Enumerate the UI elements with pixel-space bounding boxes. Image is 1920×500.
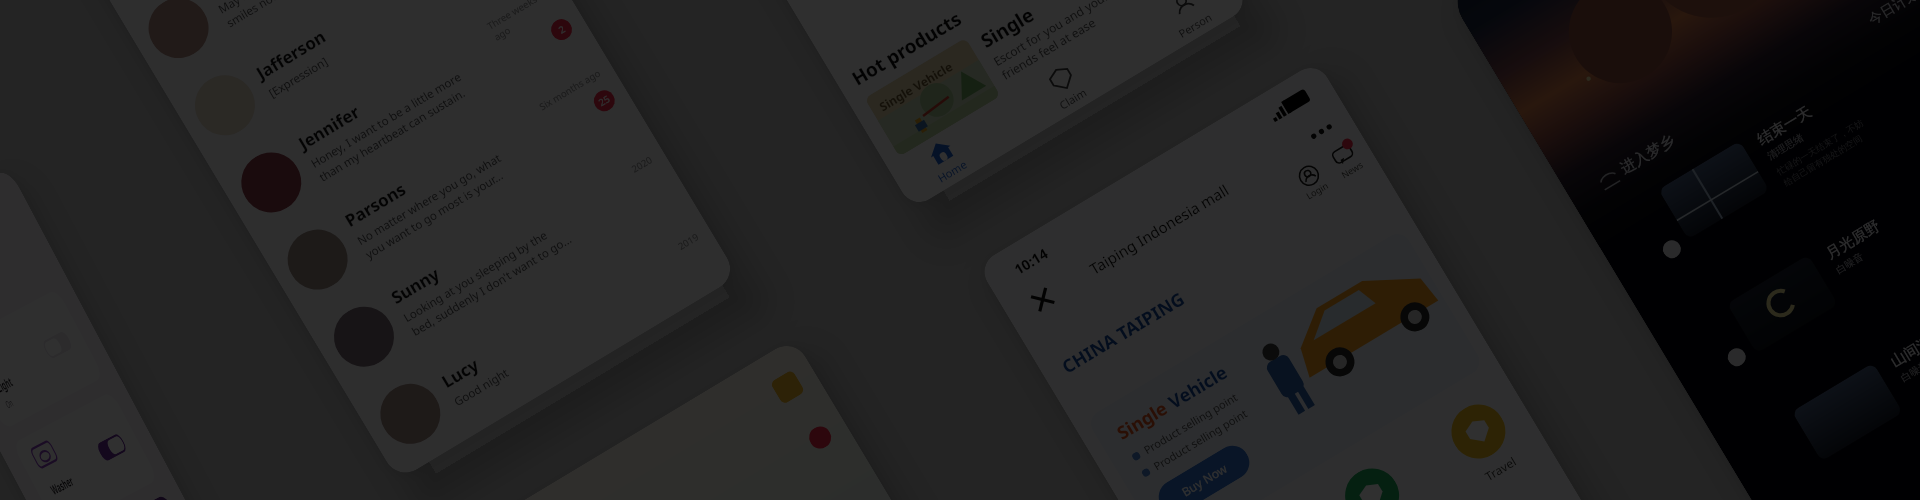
- staticText: Login: [1304, 179, 1330, 201]
- button[interactable]: [1028, 285, 1057, 314]
- staticText: Escort for you and your friends feel at …: [990, 0, 1120, 83]
- staticText: Lucy: [437, 353, 483, 393]
- staticText: 白噪音: [1833, 250, 1866, 276]
- staticText: Three weeks ago: [485, 0, 560, 44]
- staticText: Jafferson: [252, 25, 330, 84]
- staticText: No matter where you go, what you want to…: [354, 150, 512, 262]
- staticText: May life not be disturbed by smiles not …: [215, 0, 361, 30]
- button[interactable]: Jafferson: [163, 0, 550, 167]
- staticText: Good night: [451, 365, 512, 410]
- staticText: Six months ago: [537, 67, 603, 113]
- staticText: 结束一天: [1754, 102, 1815, 150]
- staticText: Taiping Indonesia mall: [1086, 180, 1232, 279]
- button[interactable]: Claim: [1038, 57, 1094, 117]
- button[interactable]: Jennifer: [209, 0, 596, 244]
- button[interactable]: 结束一天: [1658, 16, 1920, 245]
- staticText: 2019: [675, 230, 701, 253]
- staticText: Travel: [1482, 453, 1519, 484]
- staticText: Honey, I want to be a little more than m…: [308, 69, 472, 185]
- staticText: Washer: [47, 472, 76, 499]
- button[interactable]: Login: [1293, 161, 1330, 201]
- staticText: 月光原野: [1822, 216, 1884, 264]
- staticText: Looking at you sleeping by the bed, sudd…: [401, 218, 574, 339]
- button[interactable]: 山间清泉: [1792, 238, 1920, 461]
- staticText: 山间清泉: [1887, 324, 1920, 372]
- button[interactable]: Buy Now: [1152, 439, 1256, 500]
- button[interactable]: Light: [0, 288, 104, 430]
- staticText: Single Vehicle: [876, 58, 956, 114]
- staticText: 白噪音: [1898, 358, 1920, 384]
- staticText: [Expression]: [266, 53, 331, 101]
- button[interactable]: Travel: [1441, 394, 1528, 489]
- staticText: Single: [976, 1, 1039, 54]
- staticText: 25: [596, 92, 612, 109]
- staticText: Single: [1112, 393, 1176, 445]
- staticText: 2: [556, 22, 568, 36]
- staticText: Claim: [1056, 84, 1090, 112]
- staticText: Sunny: [387, 262, 444, 309]
- button[interactable]: Home: [917, 129, 974, 190]
- staticText: 今日计划: [1865, 0, 1920, 29]
- staticText: CHINA TAIPING: [1057, 286, 1189, 379]
- staticText: 2020: [629, 153, 655, 176]
- staticText: Parsons: [340, 177, 410, 232]
- staticText: 清理思绪: [1765, 131, 1806, 162]
- staticText: Vehicle: [1164, 360, 1232, 415]
- button[interactable]: Person: [1157, 0, 1219, 45]
- staticText: Buy Now: [1178, 459, 1230, 499]
- button[interactable]: Lucy: [349, 194, 735, 476]
- staticText: Jennifer: [294, 100, 364, 155]
- staticText: 进入梦乡: [1617, 131, 1678, 178]
- staticText: 忙碌的一天结束了，不妨 给自己留有独处的空间: [1775, 117, 1872, 188]
- button[interactable]: Single Vehicle: [864, 38, 1000, 157]
- button[interactable]: Sunny: [302, 117, 689, 398]
- staticText: Product selling point: [1141, 389, 1240, 457]
- staticText: Hot products: [847, 5, 966, 91]
- staticText: Light: [0, 373, 16, 396]
- button[interactable]: Parsons: [256, 40, 642, 321]
- staticText: Home: [935, 156, 970, 186]
- staticText: 10:14: [1010, 244, 1051, 279]
- staticText: News: [1339, 158, 1366, 180]
- button[interactable]: Morgan: [117, 0, 503, 90]
- button[interactable]: 月光原野: [1727, 130, 1920, 353]
- staticText: On: [3, 396, 15, 411]
- button[interactable]: News: [1328, 140, 1366, 180]
- button[interactable]: Accident: [1335, 458, 1422, 500]
- staticText: Product selling point: [1150, 405, 1250, 473]
- button[interactable]: Washer: [12, 391, 158, 500]
- staticText: Person: [1176, 9, 1215, 41]
